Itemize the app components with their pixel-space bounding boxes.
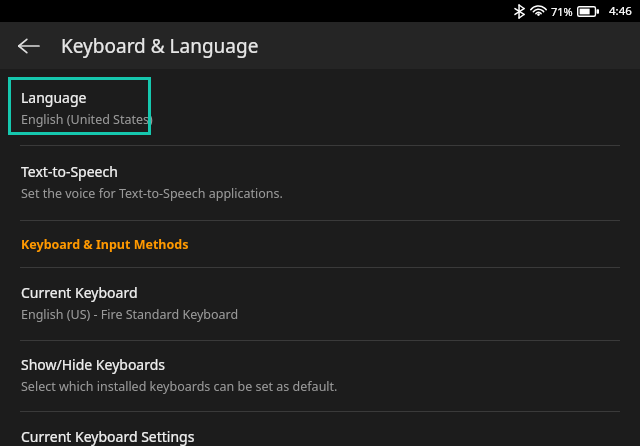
button[interactable]: Back	[9, 27, 47, 65]
staticText: Text-to-Speech	[21, 162, 118, 181]
button[interactable]: Current Keyboard Settings	[0, 412, 640, 446]
staticText: Keyboard & Language	[61, 33, 259, 59]
staticText: Select which installed keyboards can be …	[21, 378, 338, 395]
staticText: English (United States)	[21, 111, 153, 128]
button[interactable]: Language	[0, 69, 640, 145]
staticText: Keyboard & Input Methods	[21, 236, 189, 253]
staticText: Show/Hide Keyboards	[21, 355, 166, 374]
staticText: Set the voice for Text-to-Speech applica…	[21, 185, 283, 202]
staticText: 71%	[551, 4, 573, 19]
staticText: 4:46	[609, 3, 632, 19]
button[interactable]: Show/Hide Keyboards	[0, 341, 640, 411]
button[interactable]: Text-to-Speech	[0, 146, 640, 220]
staticText: Current Keyboard Settings	[21, 427, 195, 446]
staticText: Current Keyboard	[21, 283, 138, 302]
button[interactable]: Current Keyboard	[0, 268, 640, 340]
staticText: Language	[21, 88, 87, 107]
staticText: English (US) - Fire Standard Keyboard	[21, 306, 239, 323]
